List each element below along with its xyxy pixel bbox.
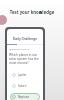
staticText: Test your knowledge: [0, 9, 64, 15]
staticText: Saturn: [18, 84, 27, 88]
button[interactable]: Neptune: [10, 93, 40, 100]
staticText: Neptune: [18, 95, 30, 99]
button[interactable]: Saturn: [10, 82, 40, 90]
staticText: Which planet in our solar system has the…: [9, 53, 41, 65]
button[interactable]: Jupiter: [10, 71, 40, 79]
staticText: Daily Challenge: [7, 37, 43, 41]
staticText: Jupiter: [18, 73, 27, 77]
staticText: QUESTION 3 OF 10: [9, 48, 30, 51]
